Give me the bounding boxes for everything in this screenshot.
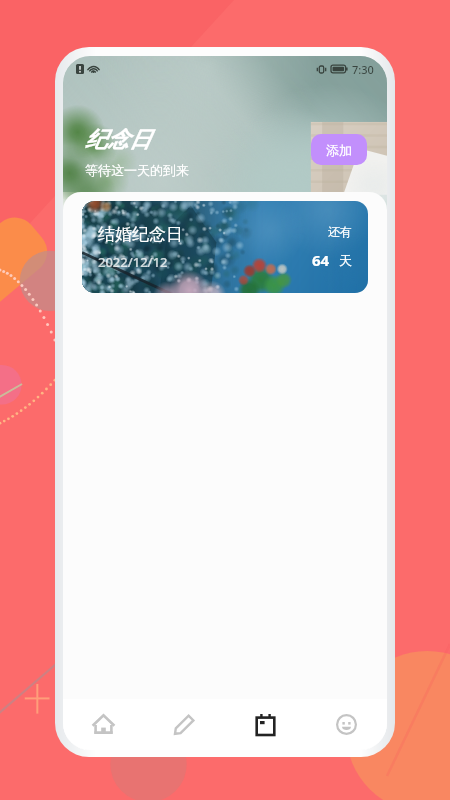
button[interactable]: Profile <box>306 699 387 750</box>
button[interactable]: Events <box>225 699 306 750</box>
staticText: 64 <box>312 250 330 270</box>
button[interactable]: 结婚纪念日 <box>82 201 368 293</box>
button[interactable]: Edit <box>144 699 225 750</box>
button[interactable]: Home <box>63 699 144 750</box>
staticText: 天 <box>339 252 352 268</box>
staticText: 添加 <box>326 142 352 158</box>
staticText: 结婚纪念日 <box>98 224 183 245</box>
staticText: 等待这一天的到来 <box>85 162 189 178</box>
staticText: 2022/12/12 <box>98 253 168 271</box>
staticText: 7:30 <box>352 62 374 77</box>
button[interactable]: 添加 <box>311 134 367 165</box>
staticText: 还有 <box>328 224 352 239</box>
staticText: 纪念日 <box>85 126 151 154</box>
